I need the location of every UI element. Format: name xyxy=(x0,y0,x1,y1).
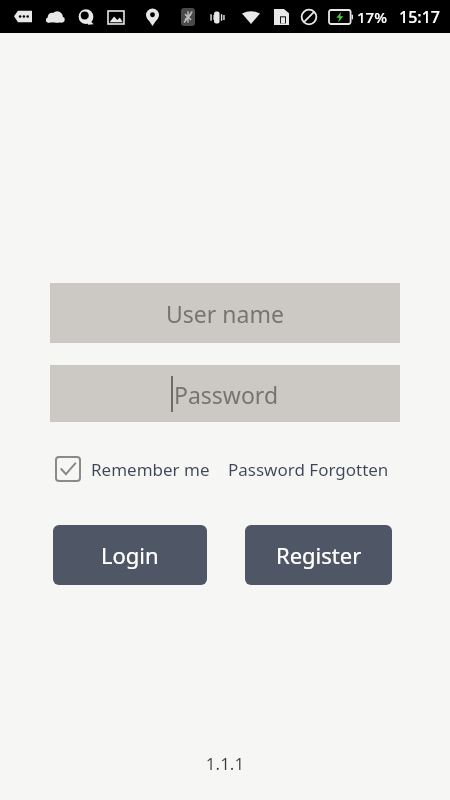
button[interactable]: User name xyxy=(50,283,400,343)
staticText: Login xyxy=(101,540,159,570)
staticText: Register xyxy=(276,540,362,570)
button[interactable]: Login xyxy=(53,525,207,585)
staticText: Password xyxy=(174,379,279,410)
staticText: 1.1.1 xyxy=(0,752,450,775)
staticText: Remember me xyxy=(91,458,210,481)
button[interactable]: Remember me xyxy=(55,456,210,482)
staticText: User name xyxy=(166,298,284,329)
button[interactable]: Password xyxy=(50,365,400,422)
staticText: 17% xyxy=(357,7,387,27)
button[interactable]: Password Forgotten xyxy=(228,458,389,481)
button[interactable]: Register xyxy=(245,525,392,585)
staticText: 15:17 xyxy=(399,6,440,28)
staticText: Password Forgotten xyxy=(228,458,389,481)
